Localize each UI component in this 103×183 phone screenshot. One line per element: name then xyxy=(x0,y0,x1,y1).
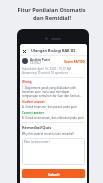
staticText: Student answer xyxy=(22,100,45,104)
staticText: 1. Bagaimana gerak yang dilakukan oleh t… xyxy=(22,86,85,98)
staticText: Remedial/Quis xyxy=(22,125,52,130)
staticText: Score 85/100 xyxy=(64,59,85,63)
staticText: Submitted: April 16, 2020 - 10.37 AM xyxy=(22,67,72,71)
staticText: Mari terima materi xyxy=(24,140,50,144)
button[interactable]: Submit xyxy=(22,169,85,178)
staticText: dan Remidial! xyxy=(33,14,71,22)
staticText: Answering 10 and of 10 questions xyxy=(22,71,69,75)
staticText: Why this student needs to take remedial? xyxy=(22,132,75,136)
staticText: Ulangan Biologi BAB III xyxy=(31,48,76,53)
button[interactable]: Mari terima materi xyxy=(22,138,85,165)
staticText: Fitur Penilaian Otomatis xyxy=(17,6,86,14)
staticText: Andita Putri xyxy=(30,57,50,61)
staticText: B. Gerak seismonasti, dan niktinasti pad… xyxy=(22,116,85,120)
staticText: Wrong xyxy=(22,80,32,84)
button[interactable]: Close xyxy=(21,48,27,54)
staticText: Correct answer xyxy=(22,111,44,115)
staticText: A. Gerak tropisme, dan parasit pada putr… xyxy=(22,105,78,109)
staticText: Submit xyxy=(48,172,60,176)
staticText: XII IPA 2 xyxy=(30,61,41,65)
